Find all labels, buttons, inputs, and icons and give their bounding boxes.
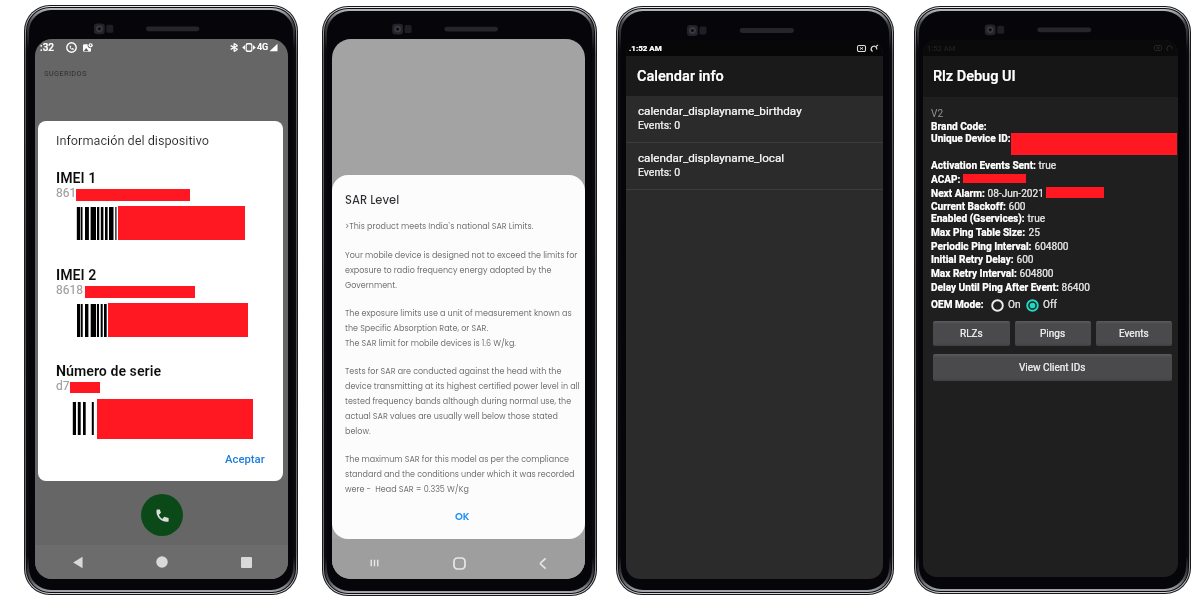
button[interactable]: OEM Mode Off bbox=[1026, 299, 1039, 312]
staticText: Events: 0 bbox=[638, 119, 681, 131]
staticText: 8618 bbox=[56, 283, 83, 297]
staticText: Off bbox=[1043, 299, 1057, 311]
staticText: Activation Events Sent: bbox=[931, 160, 1036, 172]
staticText: RLZs bbox=[960, 328, 983, 340]
staticText: OK bbox=[455, 509, 470, 523]
staticText: .1:52 AM bbox=[629, 44, 662, 53]
button[interactable]: Back bbox=[35, 545, 120, 579]
staticText: 604800 bbox=[1017, 268, 1054, 280]
staticText: true bbox=[1036, 160, 1057, 172]
staticText: On bbox=[1008, 299, 1021, 311]
button[interactable]: Home bbox=[120, 545, 204, 579]
staticText: Número de serie bbox=[56, 363, 162, 380]
button[interactable]: OK bbox=[443, 506, 482, 526]
staticText: calendar_displayname_birthday bbox=[638, 104, 802, 118]
staticText: SUGERIDOS bbox=[44, 69, 87, 78]
staticText: calendar_displayname_local bbox=[638, 151, 785, 165]
button[interactable]: OEM Mode On bbox=[991, 299, 1004, 312]
staticText: The maximum SAR for this model as per th… bbox=[345, 454, 580, 494]
staticText: Tests for SAR are conducted against the … bbox=[345, 366, 580, 436]
staticText: Current Backoff: bbox=[931, 201, 1006, 213]
staticText: Enabled (Gservices): bbox=[931, 213, 1025, 225]
staticText: The exposure limits use a unit of measur… bbox=[345, 308, 580, 348]
staticText: 86400 bbox=[1059, 282, 1090, 294]
button[interactable]: calendar_displayname_local bbox=[626, 143, 883, 189]
staticText: :32 bbox=[40, 42, 55, 54]
staticText: Your mobile device is designed not to ex… bbox=[345, 250, 580, 290]
staticText: Events: 0 bbox=[638, 166, 681, 178]
staticText: IMEI 2 bbox=[56, 267, 97, 284]
staticText: 604800 bbox=[1032, 241, 1069, 253]
staticText: ACAP: bbox=[931, 174, 961, 186]
button[interactable]: Home bbox=[417, 553, 501, 573]
staticText: 600 bbox=[1014, 254, 1034, 266]
staticText: 600 bbox=[1006, 201, 1026, 213]
staticText: Next Alarm: bbox=[931, 188, 985, 200]
staticText: Unique Device ID: bbox=[931, 133, 1011, 145]
staticText: Max Retry Interval: bbox=[931, 268, 1017, 280]
button[interactable]: calendar_displayname_birthday bbox=[626, 96, 883, 142]
button[interactable]: Aceptar bbox=[221, 450, 269, 469]
staticText: Delay Until Ping After Event: bbox=[931, 282, 1059, 294]
button[interactable]: View Client IDs bbox=[933, 354, 1172, 381]
staticText: Rlz Debug UI bbox=[933, 68, 1016, 85]
button[interactable]: Call bbox=[141, 494, 183, 536]
staticText: 4G bbox=[257, 42, 269, 53]
staticText: 08-Jun-2021 bbox=[985, 188, 1044, 200]
staticText: IMEI 1 bbox=[56, 170, 97, 187]
staticText: V2 bbox=[931, 108, 944, 120]
staticText: View Client IDs bbox=[1019, 362, 1086, 374]
staticText: 1:52 AM bbox=[927, 44, 956, 53]
staticText: 861 bbox=[56, 186, 77, 200]
button[interactable]: Events bbox=[1096, 321, 1172, 346]
button[interactable]: Back bbox=[501, 553, 585, 573]
staticText: Información del dispositivo bbox=[56, 133, 209, 148]
staticText: SAR Level bbox=[345, 192, 400, 208]
button[interactable]: Recents bbox=[332, 553, 417, 573]
staticText: Periodic Ping Interval: bbox=[931, 241, 1032, 253]
staticText: true bbox=[1025, 213, 1046, 225]
button[interactable]: Recents bbox=[204, 545, 288, 579]
staticText: Brand Code: bbox=[931, 121, 987, 133]
staticText: Events bbox=[1119, 328, 1149, 340]
staticText: Calendar info bbox=[637, 68, 724, 85]
staticText: Initial Retry Delay: bbox=[931, 254, 1014, 266]
staticText: >This product meets India`s national SAR… bbox=[345, 221, 534, 232]
staticText: d7 bbox=[56, 379, 70, 393]
button[interactable]: RLZs bbox=[933, 321, 1010, 346]
button[interactable]: Pings bbox=[1015, 321, 1091, 346]
staticText: Aceptar bbox=[225, 453, 265, 466]
staticText: OEM Mode: bbox=[931, 299, 984, 311]
staticText: 25 bbox=[1026, 227, 1040, 239]
staticText: Max Ping Table Size: bbox=[931, 227, 1026, 239]
staticText: Pings bbox=[1040, 328, 1066, 340]
